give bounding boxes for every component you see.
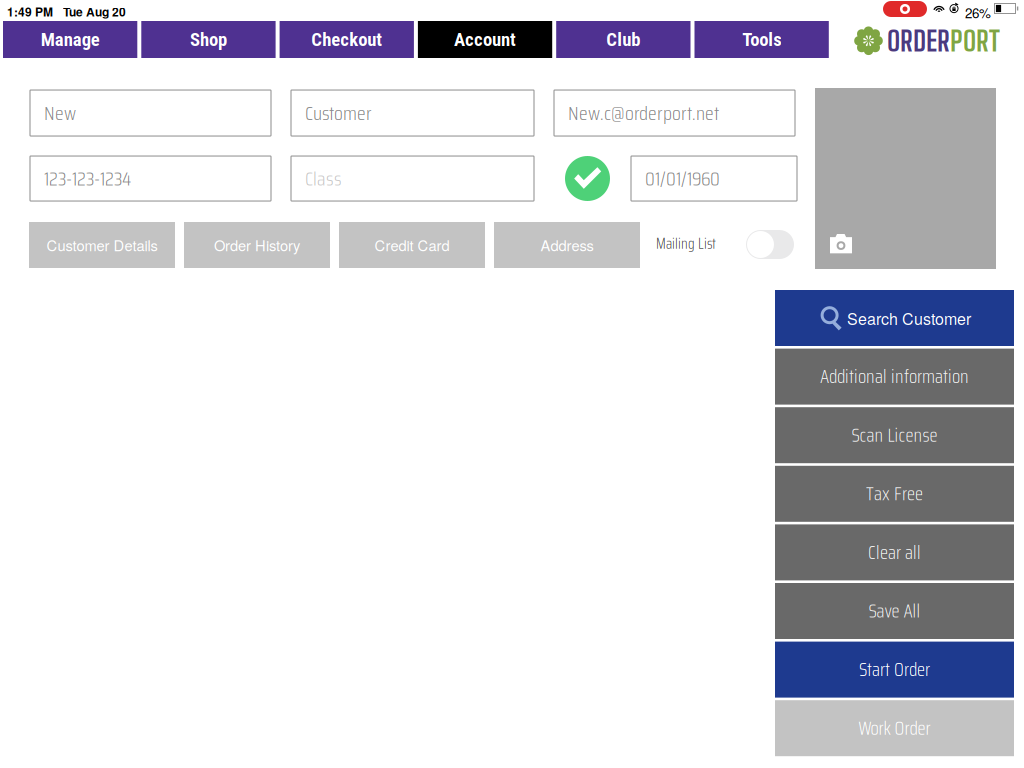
- staticText: 26%: [965, 3, 991, 22]
- staticText: Additional information: [820, 362, 969, 391]
- button[interactable]: Tax Free: [775, 466, 1014, 522]
- staticText: Credit Card: [374, 234, 449, 255]
- staticText: Save All: [868, 596, 920, 626]
- staticText: Address: [540, 234, 593, 255]
- staticText: Club: [606, 29, 640, 50]
- staticText: Customer Details: [46, 234, 157, 255]
- button[interactable]: Address: [494, 222, 640, 268]
- staticText: 01/01/1960: [645, 163, 720, 194]
- staticText: Mailing List: [656, 232, 716, 255]
- staticText: New: [44, 97, 76, 129]
- button[interactable]: Mailing List: [746, 230, 794, 259]
- staticText: 1:49 PM: [7, 3, 53, 20]
- staticText: Shop: [190, 29, 227, 50]
- button[interactable]: Order History: [184, 222, 330, 268]
- button[interactable]: Scan License: [775, 407, 1014, 463]
- button[interactable]: Credit Card: [339, 222, 485, 268]
- staticText: Checkout: [311, 29, 382, 50]
- staticText: ORDER: [887, 24, 950, 57]
- button[interactable]: Manage: [3, 21, 137, 58]
- staticText: Clear all: [868, 538, 921, 567]
- button[interactable]: Tools: [694, 21, 829, 58]
- button[interactable]: Customer Details: [29, 222, 175, 268]
- staticText: 123-123-1234: [44, 163, 131, 194]
- staticText: Class: [305, 163, 342, 194]
- staticText: PORT: [950, 24, 1000, 57]
- staticText: Tools: [742, 29, 781, 50]
- button[interactable]: Checkout: [280, 21, 414, 58]
- staticText: Search Customer: [847, 306, 971, 329]
- staticText: Scan License: [851, 420, 937, 450]
- button[interactable]: Search Customer: [775, 290, 1014, 346]
- button[interactable]: Clear all: [775, 524, 1014, 580]
- staticText: Manage: [41, 29, 100, 50]
- staticText: Order History: [214, 234, 300, 255]
- button[interactable]: Account: [418, 21, 552, 58]
- button[interactable]: Start Order: [775, 642, 1014, 698]
- button[interactable]: Club: [556, 21, 690, 58]
- staticText: Work Order: [858, 713, 930, 743]
- button[interactable]: Shop: [141, 21, 276, 58]
- staticText: New.c@orderport.net: [568, 97, 719, 129]
- button[interactable]: Save All: [775, 583, 1014, 639]
- button[interactable]: Additional information: [775, 349, 1014, 405]
- staticText: Account: [454, 29, 516, 50]
- staticText: Customer: [305, 97, 372, 129]
- button[interactable]: Work Order: [775, 700, 1014, 756]
- staticText: Start Order: [859, 655, 930, 684]
- staticText: Tax Free: [866, 479, 923, 508]
- staticText: Tue Aug 20: [63, 3, 126, 20]
